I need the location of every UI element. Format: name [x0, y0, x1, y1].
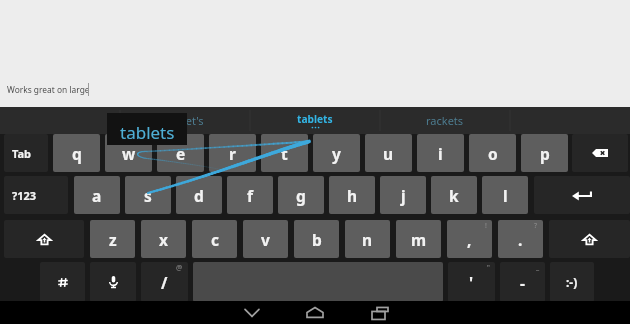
staticText: rackets [426, 113, 464, 128]
staticText: i [438, 143, 443, 164]
button[interactable]: q [53, 134, 100, 172]
button[interactable]: z [90, 220, 135, 258]
button[interactable]: j [380, 176, 426, 214]
staticText: d [194, 185, 204, 206]
button[interactable]: m [396, 220, 441, 258]
button[interactable]: Tab [4, 134, 48, 172]
staticText: ! [485, 221, 487, 231]
button[interactable]: t [261, 134, 308, 172]
button[interactable]: x [141, 220, 186, 258]
button[interactable]: Shift [549, 220, 630, 258]
button[interactable]: Voice input [90, 262, 136, 302]
staticText: n [362, 229, 373, 250]
button[interactable]: tablets [250, 107, 380, 134]
button[interactable]: Shift [4, 220, 84, 258]
button[interactable]: c [192, 220, 237, 258]
staticText: a [92, 185, 102, 206]
staticText: l [503, 185, 508, 206]
staticText: tablets [297, 112, 333, 126]
button[interactable] [193, 262, 443, 302]
staticText: y [332, 143, 341, 164]
button[interactable]: tablet's [120, 107, 250, 134]
staticText: @ [176, 263, 183, 273]
button[interactable]: k [431, 176, 477, 214]
staticText: tablets [120, 121, 175, 144]
button[interactable]: v [243, 220, 288, 258]
button[interactable]: d [176, 176, 222, 214]
staticText: - [520, 272, 525, 293]
staticText: z [109, 229, 117, 250]
staticText: p [540, 143, 550, 164]
staticText: " [487, 263, 490, 273]
button[interactable]: ' [448, 262, 495, 302]
staticText: c [211, 229, 219, 250]
button[interactable]: b [294, 220, 339, 258]
staticText: o [488, 143, 498, 164]
button[interactable]: n [345, 220, 390, 258]
button[interactable]: f [227, 176, 273, 214]
button[interactable]: o [469, 134, 516, 172]
staticText: Tab [12, 146, 32, 161]
staticText: g [296, 185, 306, 206]
staticText: . [518, 229, 523, 250]
button[interactable]: Enter [534, 176, 630, 214]
staticText: x [159, 229, 168, 250]
button[interactable]: Smiley [550, 262, 594, 302]
staticText: h [347, 185, 358, 206]
button[interactable]: rackets [380, 107, 510, 134]
staticText: q [72, 143, 82, 164]
button[interactable]: i [417, 134, 464, 172]
button[interactable]: , [447, 220, 492, 258]
button[interactable]: tablets [107, 113, 187, 145]
button[interactable]: l [482, 176, 528, 214]
staticText: f [247, 185, 253, 206]
staticText: b [312, 229, 322, 250]
button[interactable]: a [74, 176, 120, 214]
button[interactable]: r [209, 134, 256, 172]
button[interactable]: h [329, 176, 375, 214]
button[interactable]: u [365, 134, 412, 172]
staticText: ?123 [12, 188, 37, 203]
staticText: / [161, 272, 168, 293]
staticText: ' [469, 272, 474, 293]
staticText: , [467, 229, 472, 250]
button[interactable]: y [313, 134, 360, 172]
button[interactable]: w [105, 134, 152, 172]
staticText: r [229, 143, 236, 164]
staticText: Works great on large [7, 84, 90, 95]
staticText: ? [534, 221, 538, 231]
staticText: s [144, 185, 152, 206]
button[interactable]: - [500, 262, 545, 302]
button[interactable]: Settings [40, 262, 85, 302]
button[interactable]: e [157, 134, 204, 172]
staticText: e [176, 143, 186, 164]
staticText: :-) [566, 274, 578, 290]
staticText: k [449, 185, 459, 206]
staticText: j [401, 185, 406, 206]
staticText: tablet's [166, 113, 204, 128]
button[interactable]: s [125, 176, 171, 214]
staticText: v [261, 229, 270, 250]
staticText: m [411, 229, 427, 250]
button[interactable]: p [521, 134, 568, 172]
staticText: t [281, 143, 288, 164]
button[interactable]: Backspace [572, 134, 628, 172]
button[interactable]: g [278, 176, 324, 214]
button[interactable]: ?123 [4, 176, 68, 214]
staticText: _ [536, 263, 540, 273]
staticText: w [122, 143, 136, 164]
staticText: u [383, 143, 394, 164]
button[interactable]: / [141, 262, 188, 302]
button[interactable]: . [498, 220, 543, 258]
